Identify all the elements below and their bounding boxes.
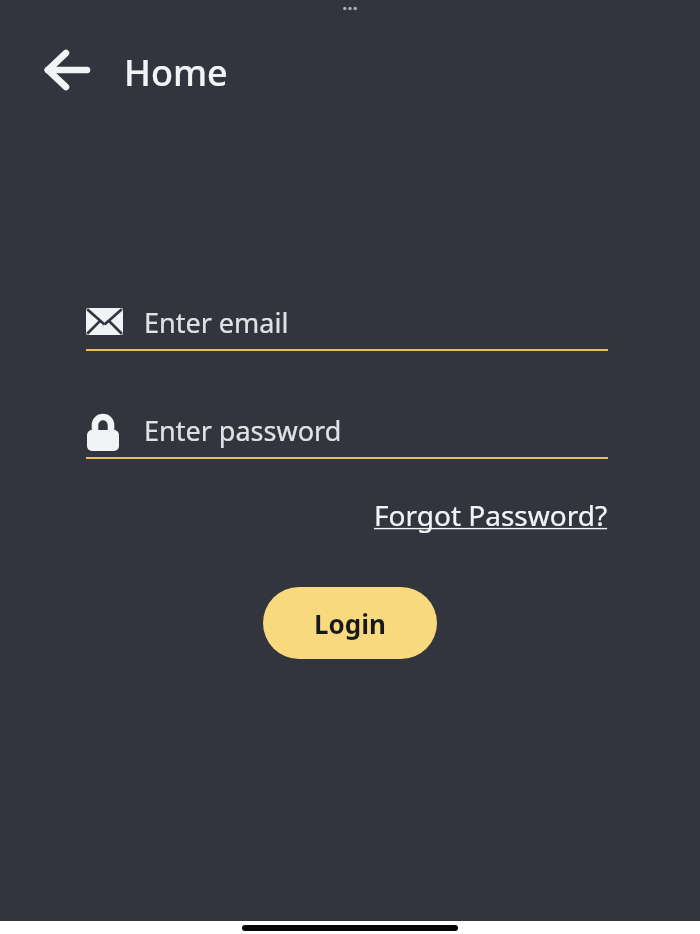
button[interactable]: Enter password [86, 408, 608, 452]
staticText: Enter password [144, 412, 342, 449]
staticText: Login [314, 606, 386, 641]
button[interactable]: Forgot Password? [374, 496, 608, 534]
button[interactable]: Enter email [86, 300, 608, 344]
button[interactable]: Login [263, 587, 437, 659]
staticText: Home [124, 48, 228, 97]
button[interactable] [38, 44, 96, 96]
staticText: Enter email [144, 304, 289, 341]
